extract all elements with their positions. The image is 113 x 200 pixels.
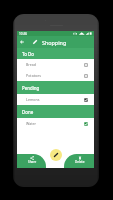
staticText: Lemons — [26, 97, 40, 102]
staticText: Shopping — [42, 39, 67, 46]
button[interactable]: Delete — [64, 154, 94, 168]
button[interactable]: Potatoes — [17, 70, 94, 81]
button[interactable]: Done — [17, 105, 94, 118]
button[interactable]: To Do — [17, 48, 94, 59]
staticText: Water — [26, 121, 37, 126]
staticText: Done — [22, 109, 34, 115]
button[interactable]: Share — [17, 154, 46, 168]
staticText: Potatoes — [26, 73, 41, 78]
button[interactable]: Bread — [17, 59, 94, 70]
button[interactable]: Edit list name — [32, 39, 38, 45]
staticText: Delete — [75, 160, 85, 164]
button[interactable]: Lemons — [17, 94, 94, 105]
staticText: Share — [28, 160, 37, 164]
staticText: 10:36 — [19, 32, 28, 36]
staticText: Pending — [22, 85, 40, 91]
button[interactable]: Pending — [17, 81, 94, 94]
staticText: Bread — [26, 62, 37, 67]
button[interactable]: Water — [17, 118, 94, 129]
button[interactable]: Back — [19, 39, 25, 45]
staticText: To Do — [22, 51, 34, 57]
button[interactable]: Add item — [50, 149, 62, 161]
